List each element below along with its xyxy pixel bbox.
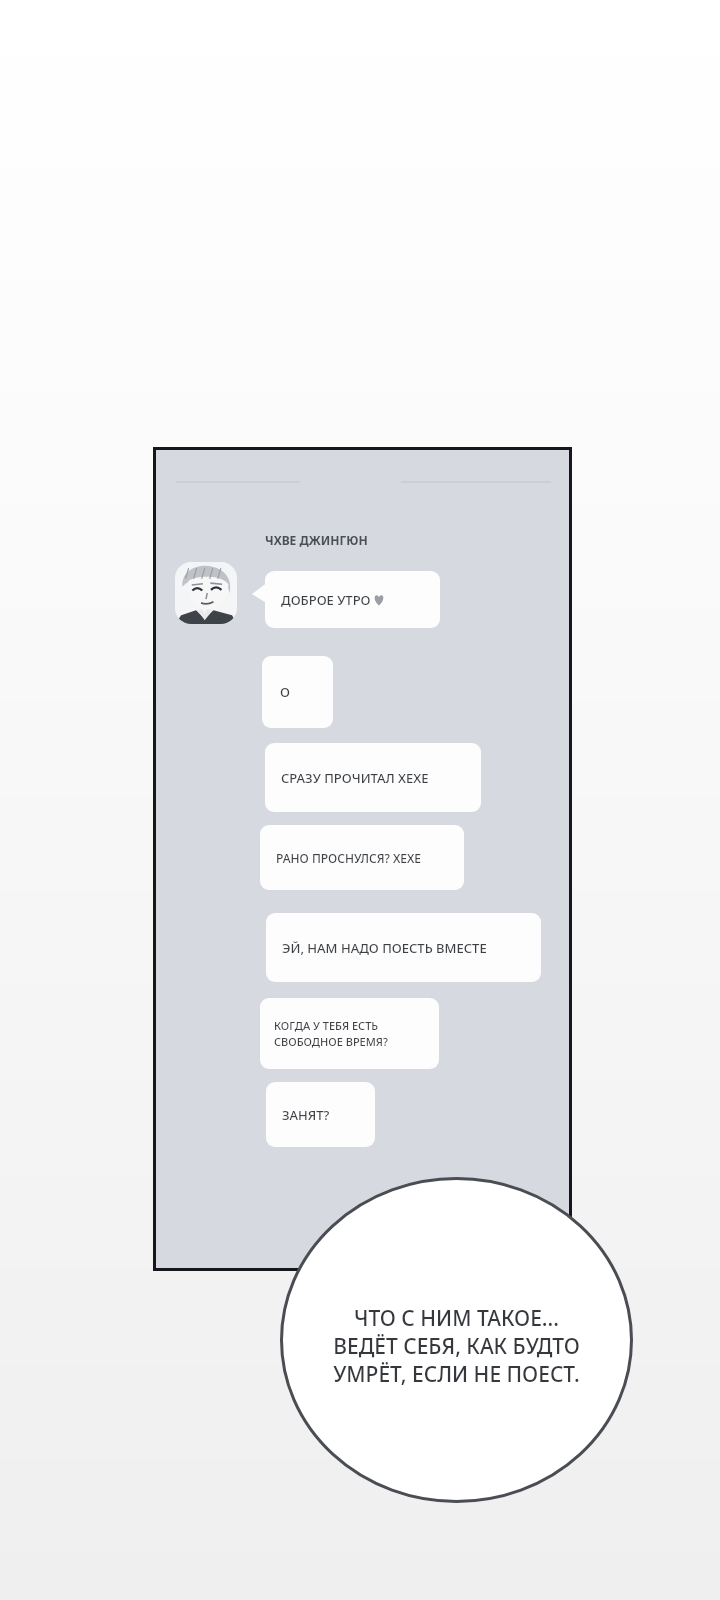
button[interactable]: ЭЙ, НАМ НАДО ПОЕСТЬ ВМЕСТЕ: [266, 913, 541, 982]
staticText: ДОБРОЕ УТРО: [281, 591, 371, 609]
button[interactable]: ДОБРОЕ УТРО: [265, 571, 440, 628]
button[interactable]: КОГДА У ТЕБЯ ЕСТЬ СВОБОДНОЕ ВРЕМЯ?: [260, 998, 439, 1069]
button[interactable]: СРАЗУ ПРОЧИТАЛ ХЕХЕ: [265, 743, 481, 812]
staticText: ЗАНЯТ?: [282, 1106, 330, 1124]
staticText: ЧХВЕ ДЖИНГЮН: [265, 532, 368, 548]
staticText: ЭЙ, НАМ НАДО ПОЕСТЬ ВМЕСТЕ: [282, 939, 487, 957]
button[interactable]: РАНО ПРОСНУЛСЯ? ХЕХЕ: [260, 825, 464, 890]
staticText: ЧТО С НИМ ТАКОЕ... ВЕДЁТ СЕБЯ, КАК БУДТО…: [333, 1304, 580, 1388]
staticText: РАНО ПРОСНУЛСЯ? ХЕХЕ: [276, 850, 421, 866]
button[interactable]: О: [262, 656, 333, 728]
button[interactable]: Profile photo: [175, 562, 237, 624]
staticText: О: [280, 683, 290, 701]
button[interactable]: ЗАНЯТ?: [266, 1082, 375, 1147]
staticText: КОГДА У ТЕБЯ ЕСТЬ СВОБОДНОЕ ВРЕМЯ?: [274, 1018, 388, 1050]
staticText: СРАЗУ ПРОЧИТАЛ ХЕХЕ: [281, 769, 429, 787]
